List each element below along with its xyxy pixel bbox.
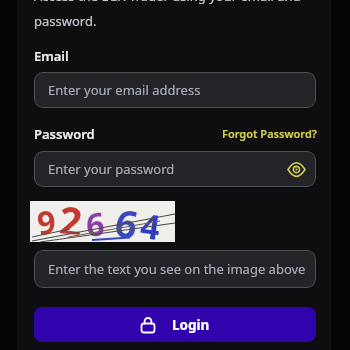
staticText: Password <box>34 125 95 143</box>
staticText: 6 <box>113 195 143 240</box>
staticText: 4 <box>138 202 164 245</box>
button[interactable]: Enter your email address <box>34 72 316 108</box>
button[interactable]: Enter the text you see on the image abov… <box>34 250 316 288</box>
staticText: Enter your password <box>48 160 175 178</box>
staticText: 2 <box>58 192 85 235</box>
button[interactable]: Enter your password <box>34 151 316 187</box>
staticText: 6 <box>85 201 106 243</box>
button[interactable] <box>284 157 308 181</box>
staticText: Email <box>34 47 69 65</box>
staticText: Enter your email address <box>48 81 201 99</box>
button[interactable]: Login <box>34 307 316 342</box>
staticText: Login <box>172 316 210 334</box>
staticText: password. <box>34 12 97 30</box>
staticText: Enter the text you see on the image abov… <box>48 260 306 278</box>
staticText: Access the EGX Trader using your email a… <box>34 0 301 5</box>
staticText: 9 <box>35 199 58 242</box>
button[interactable]: Forgot Password? <box>222 126 317 141</box>
